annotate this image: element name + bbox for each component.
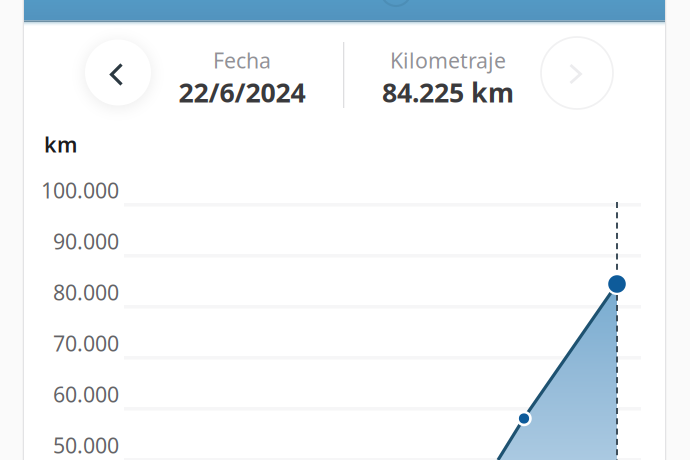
button[interactable]: Anterior — [85, 39, 151, 105]
staticText: 90.000 — [53, 227, 119, 255]
button[interactable]: Siguiente — [541, 37, 613, 109]
staticText: 22/6/2024 — [178, 74, 305, 110]
staticText: 50.000 — [53, 431, 119, 459]
staticText: 80.000 — [53, 278, 119, 306]
staticText: 100.000 — [41, 176, 119, 204]
staticText: 70.000 — [53, 329, 119, 357]
staticText: Fecha — [213, 46, 271, 74]
staticText: 84.225 km — [382, 74, 514, 110]
staticText: 60.000 — [53, 380, 119, 408]
staticText: km — [44, 130, 77, 158]
staticText: Kilometraje — [390, 46, 506, 74]
